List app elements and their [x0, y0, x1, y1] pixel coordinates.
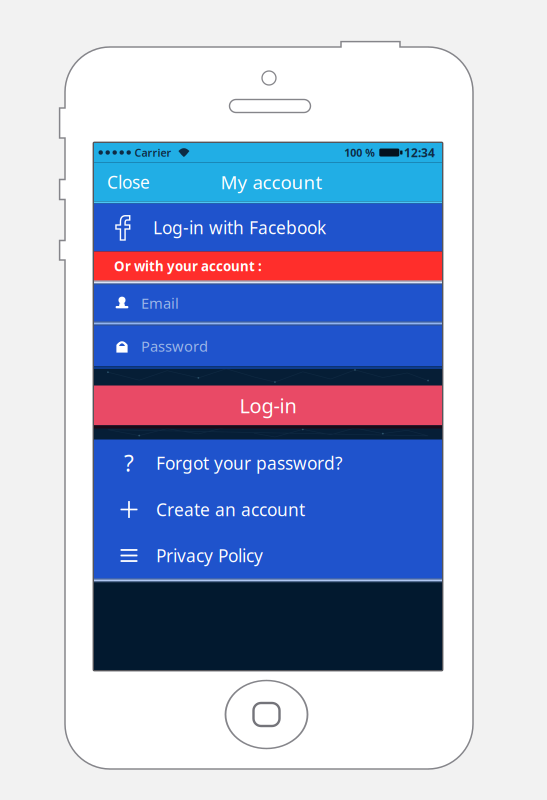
staticText: Forgot your password? [156, 451, 343, 474]
staticText: 100 % [344, 145, 375, 160]
button[interactable]: Privacy Policy [94, 532, 442, 578]
staticText: Email [141, 293, 179, 313]
staticText: 12:34 [404, 144, 435, 160]
button[interactable]: Log-in [94, 385, 442, 425]
staticText: Or with your account : [114, 257, 262, 275]
button[interactable]: Log-in with Facebook [94, 203, 442, 251]
staticText: Close [107, 170, 150, 193]
button[interactable]: Close [94, 162, 204, 201]
button[interactable]: Create an account [94, 486, 442, 532]
staticText: My account [220, 170, 322, 194]
staticText: Privacy Policy [156, 544, 263, 567]
staticText: Create an account [156, 498, 305, 521]
button[interactable]: Email [94, 284, 442, 321]
staticText: ? [124, 448, 134, 478]
staticText: Carrier [134, 145, 171, 160]
staticText: Password [141, 336, 208, 356]
button[interactable]: Password [94, 325, 442, 366]
staticText: Log-in with Facebook [153, 216, 326, 239]
staticText: Log-in [239, 392, 296, 419]
button[interactable]: ? [94, 439, 442, 486]
